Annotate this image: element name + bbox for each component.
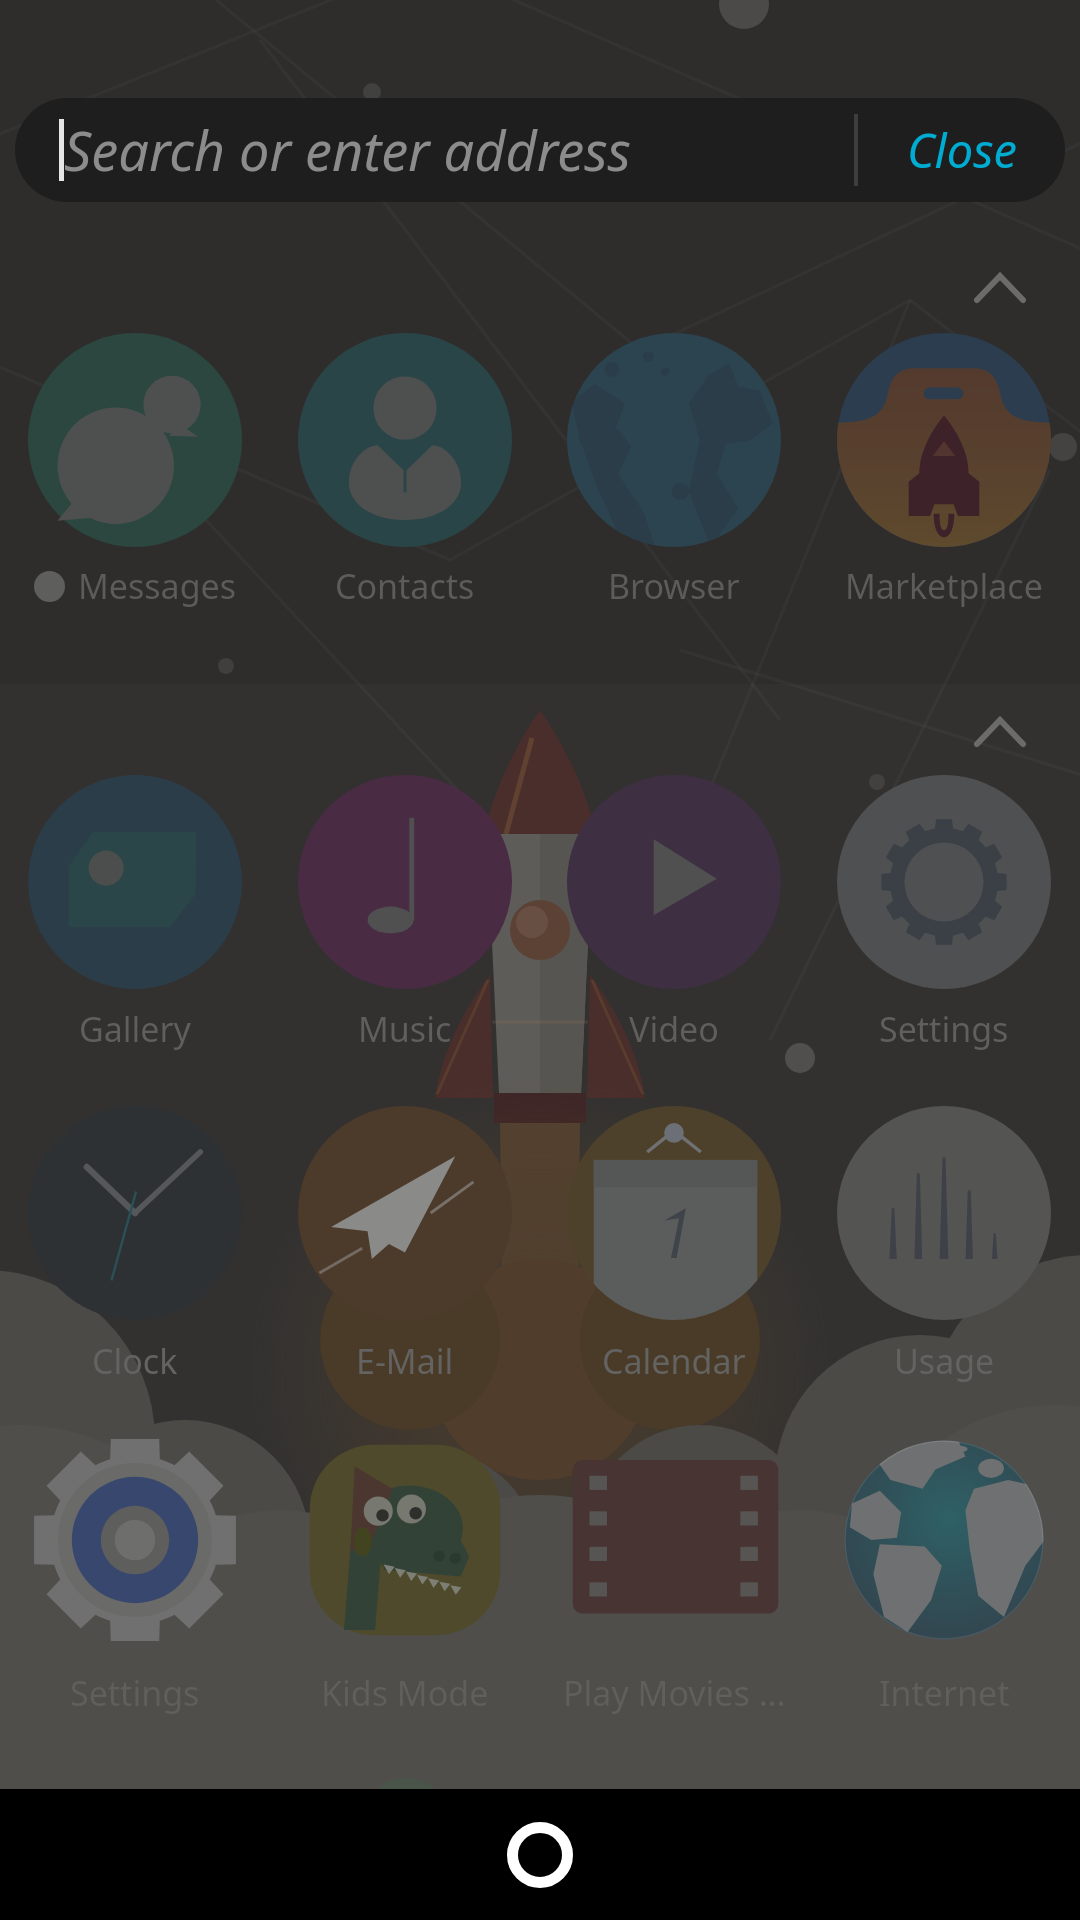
staticText: Contacts: [335, 563, 475, 609]
staticText: Internet: [879, 1670, 1010, 1716]
button[interactable]: Internet: [824, 1425, 1064, 1695]
button[interactable]: Kids Mode: [285, 1425, 525, 1695]
button[interactable]: E-Mail: [285, 1098, 525, 1368]
staticText: Settings: [879, 1006, 1009, 1052]
button[interactable]: Play Movies: [554, 1425, 794, 1695]
staticText: Browser: [608, 563, 740, 609]
button[interactable]: Home: [495, 1810, 585, 1900]
staticText: Search or enter address: [64, 113, 631, 187]
button[interactable]: Settings: [824, 767, 1064, 1037]
staticText: Close: [907, 118, 1017, 182]
staticText: Play Movies …: [563, 1670, 786, 1716]
staticText: Usage: [894, 1338, 995, 1384]
staticText: E-Mail: [356, 1338, 454, 1384]
button[interactable]: Messages: [15, 325, 255, 595]
button[interactable]: Contacts: [285, 325, 525, 595]
staticText: Gallery: [79, 1006, 191, 1052]
staticText: Marketplace: [845, 563, 1043, 609]
button[interactable]: Settings: [15, 1425, 255, 1695]
button[interactable]: Usage: [824, 1098, 1064, 1368]
staticText: Messages: [78, 563, 237, 609]
button[interactable]: Music: [285, 767, 525, 1037]
staticText: Kids Mode: [321, 1670, 489, 1716]
staticText: Settings: [70, 1670, 200, 1716]
button[interactable]: Clock: [15, 1098, 255, 1368]
button[interactable]: Collapse favourites: [955, 250, 1045, 326]
button[interactable]: Video: [554, 767, 794, 1037]
staticText: Video: [629, 1006, 719, 1052]
button[interactable]: Marketplace: [824, 325, 1064, 595]
button[interactable]: Gallery: [15, 767, 255, 1037]
button[interactable]: Close: [858, 98, 1065, 202]
button[interactable]: Calendar: [554, 1098, 794, 1368]
button[interactable]: Collapse apps: [955, 694, 1045, 770]
staticText: Clock: [92, 1338, 178, 1384]
staticText: Music: [358, 1006, 452, 1052]
button[interactable]: Search or enter address: [15, 98, 854, 202]
button[interactable]: Browser: [554, 325, 794, 595]
staticText: Calendar: [602, 1338, 746, 1384]
